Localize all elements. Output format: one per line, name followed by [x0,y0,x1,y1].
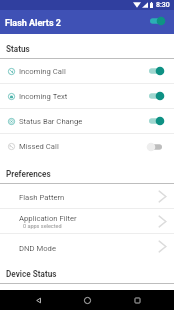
button[interactable]: Recent apps [125,290,149,310]
staticText: Incoming Call [19,67,66,76]
button[interactable]: Home [75,290,99,310]
button[interactable]: Back [26,290,50,310]
button[interactable]: Incoming Text [0,84,174,108]
staticText: Incoming Text [19,92,68,101]
staticText: Application Filter [19,214,77,223]
button[interactable]: Status Bar Change [0,109,174,133]
button[interactable]: DND Mode [0,234,174,259]
button[interactable]: Enable flash alerts [146,13,166,29]
staticText: Status [6,44,30,54]
staticText: Status Bar Change [19,117,83,126]
staticText: Preferences [6,169,51,179]
staticText: Flash Alerts 2 [5,18,61,29]
button[interactable]: Incoming Call [0,59,174,83]
button[interactable]: Flash Pattern [0,184,174,208]
staticText: Flash Pattern [19,193,65,202]
staticText: Missed Call [19,142,59,151]
button[interactable]: Application Filter [0,209,174,233]
button[interactable]: Missed Call [0,134,174,159]
staticText: DND Mode [19,244,56,253]
staticText: 0 apps selected [23,223,62,229]
staticText: 8:30 [156,1,170,9]
staticText: Device Status [6,269,57,279]
